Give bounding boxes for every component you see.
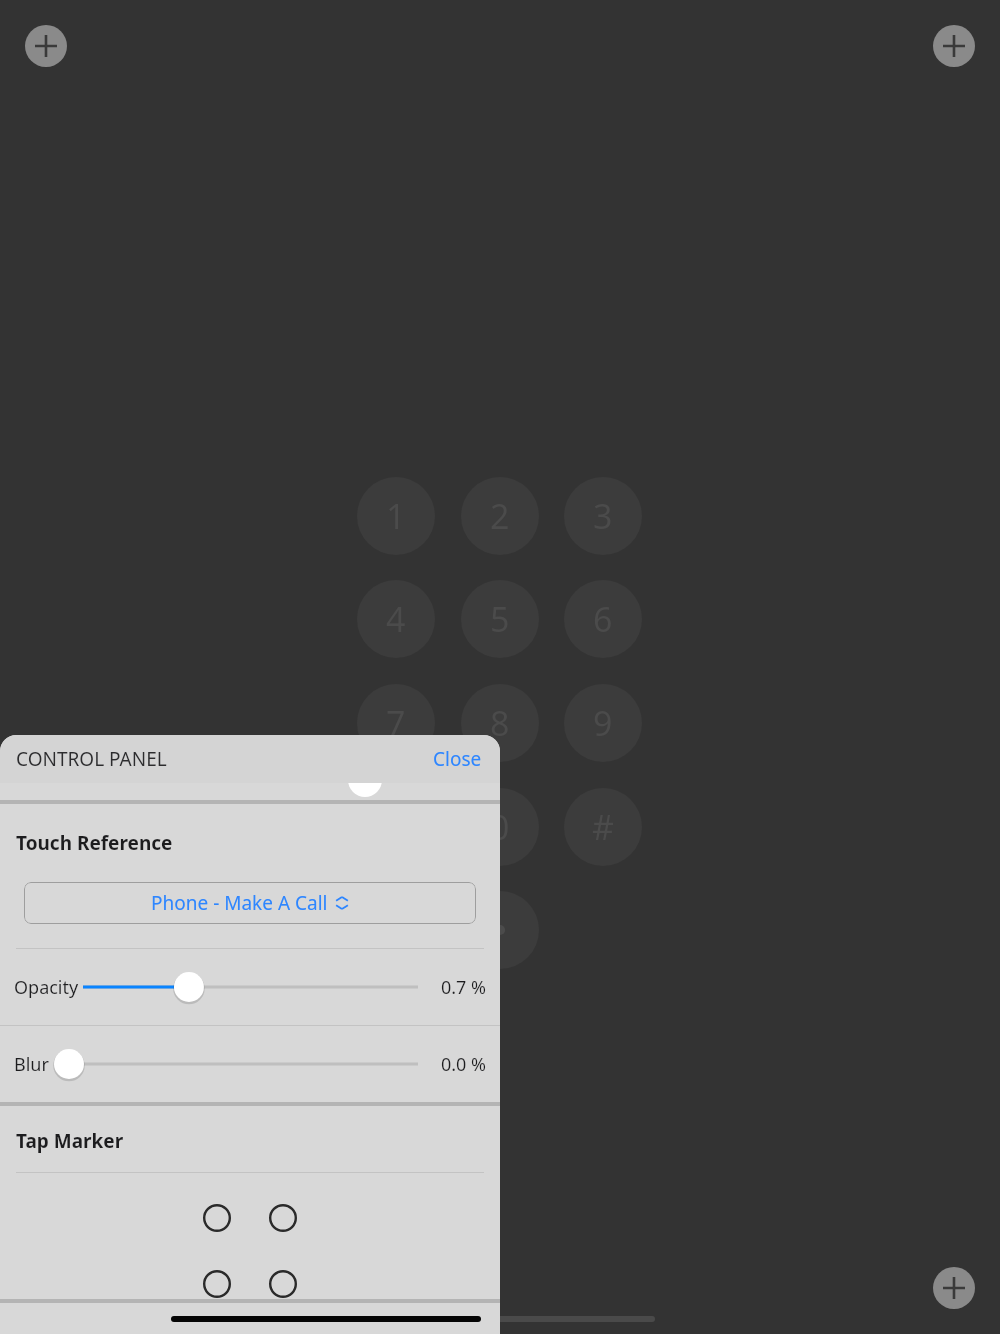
staticText: Tap Marker bbox=[16, 1128, 124, 1154]
button[interactable]: 7 bbox=[357, 684, 435, 762]
button[interactable]: Add top left bbox=[25, 25, 67, 67]
button[interactable]: 5 bbox=[461, 580, 539, 658]
button[interactable]: Add top right bbox=[933, 25, 975, 67]
staticText: Phone - Make A Call bbox=[151, 890, 328, 916]
staticText: 3 bbox=[593, 493, 613, 539]
button[interactable]: * bbox=[357, 788, 435, 866]
button[interactable] bbox=[202, 1203, 232, 1233]
button[interactable] bbox=[268, 1203, 298, 1233]
button[interactable]: 9 bbox=[564, 684, 642, 762]
button[interactable] bbox=[80, 970, 418, 1004]
staticText: 8 bbox=[490, 700, 510, 746]
button[interactable]: 3 bbox=[564, 477, 642, 555]
staticText: Opacity bbox=[14, 975, 80, 1000]
button[interactable]: 2 bbox=[461, 477, 539, 555]
staticText: 7 bbox=[386, 700, 406, 746]
button[interactable]: 4 bbox=[357, 580, 435, 658]
staticText: CONTROL PANEL bbox=[16, 746, 167, 772]
staticText: 0.0 % bbox=[428, 1052, 486, 1077]
staticText: 6 bbox=[593, 596, 613, 642]
staticText: Touch Reference bbox=[16, 830, 173, 856]
button[interactable]: Close bbox=[415, 738, 500, 780]
staticText: 1 bbox=[386, 493, 406, 539]
staticText: 5 bbox=[490, 596, 510, 642]
staticText: Close bbox=[433, 746, 482, 772]
button[interactable] bbox=[202, 1269, 232, 1299]
button[interactable]: 0 bbox=[461, 788, 539, 866]
button[interactable]: 8 bbox=[461, 684, 539, 762]
button[interactable]: Call bbox=[461, 891, 539, 969]
staticText: # bbox=[592, 804, 614, 850]
staticText: 9 bbox=[593, 700, 613, 746]
staticText: 4 bbox=[386, 596, 406, 642]
staticText: Blur bbox=[14, 1052, 54, 1077]
staticText: 2 bbox=[490, 493, 510, 539]
button[interactable]: 1 bbox=[357, 477, 435, 555]
button[interactable]: 6 bbox=[564, 580, 642, 658]
button[interactable] bbox=[54, 1047, 418, 1081]
button[interactable]: # bbox=[564, 788, 642, 866]
button[interactable]: Phone - Make A Call bbox=[24, 882, 476, 924]
button[interactable]: Add bottom right bbox=[933, 1267, 975, 1309]
staticText: 0.7 % bbox=[428, 975, 486, 1000]
button[interactable] bbox=[268, 1269, 298, 1299]
staticText: 0 bbox=[490, 804, 510, 850]
